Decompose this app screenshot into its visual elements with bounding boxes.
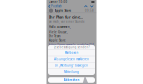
staticText: Mailboxen bbox=[64, 51, 78, 54]
staticText: Viele Grusse, bbox=[49, 30, 68, 34]
button[interactable]: Als ungelesen markieren bbox=[48, 56, 95, 62]
staticText: Apple Store bbox=[49, 39, 66, 42]
staticText: 09:58 bbox=[85, 9, 94, 12]
staticText: In „Werbung“ bewegen bbox=[55, 64, 88, 67]
staticText: Abbrechen bbox=[63, 78, 79, 82]
button[interactable]: Mitteilung bbox=[48, 69, 95, 75]
button[interactable]: Previous message bbox=[83, 4, 89, 9]
staticText: Mitteilung bbox=[64, 70, 79, 74]
button[interactable]: Mailboxen bbox=[48, 50, 95, 56]
staticText: Lesebestatigung senden? bbox=[53, 45, 89, 49]
button[interactable]: Postfach bbox=[48, 4, 62, 9]
staticText: Ihr Team bbox=[49, 34, 60, 38]
staticText: https://www.example.com/plan/24 bbox=[49, 43, 94, 47]
staticText: Postfach bbox=[51, 4, 62, 8]
staticText: Hallo zusammen, bbox=[49, 25, 71, 29]
staticText: an mich, vor einer Stunde bbox=[49, 20, 85, 23]
staticText: Carrier bbox=[48, 0, 57, 4]
staticText: 10:00 bbox=[58, 0, 67, 4]
button[interactable]: Abbrechen bbox=[48, 77, 95, 83]
button[interactable]: Next message bbox=[89, 4, 95, 9]
staticText: Apple Store bbox=[54, 9, 71, 12]
staticText: Als ungelesen markieren bbox=[54, 57, 89, 61]
button[interactable]: In „Werbung“ bewegen bbox=[48, 62, 95, 69]
staticText: Ihr Plan fur eine... bbox=[49, 14, 83, 19]
